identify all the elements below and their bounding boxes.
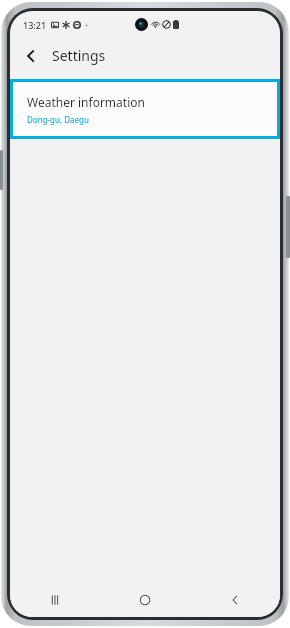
button[interactable]: Navigate up [16, 41, 46, 71]
staticText: Weather information [27, 94, 145, 110]
staticText: Dong-gu, Daegu [27, 114, 89, 125]
button[interactable]: Home [100, 583, 190, 617]
button[interactable]: Back [190, 583, 280, 617]
staticText: Settings [52, 46, 106, 65]
button[interactable]: Weather information [13, 82, 277, 136]
staticText: 13:21 [23, 19, 47, 31]
button[interactable]: Recent apps [10, 583, 100, 617]
